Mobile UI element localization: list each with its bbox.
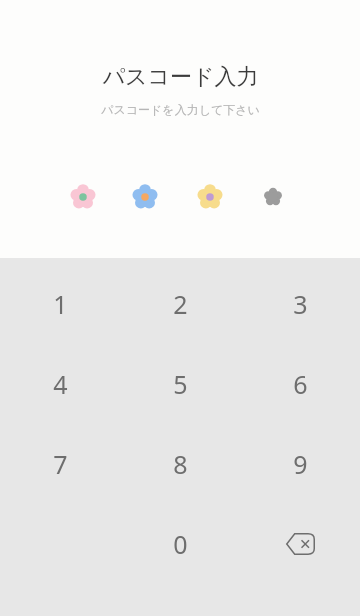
button[interactable]: 1 [0, 264, 120, 344]
staticText: 6 [293, 367, 308, 401]
staticText: 9 [293, 447, 308, 481]
button[interactable]: 2 [120, 264, 240, 344]
button[interactable]: 0 [120, 504, 240, 584]
button[interactable]: 4 [0, 344, 120, 424]
staticText: 1 [53, 287, 68, 321]
staticText: 5 [173, 367, 188, 401]
staticText: 7 [53, 447, 68, 481]
staticText: 2 [173, 287, 188, 321]
button[interactable]: 3 [240, 264, 360, 344]
button[interactable]: Backspace [270, 514, 330, 574]
button[interactable]: 9 [240, 424, 360, 504]
button[interactable]: 6 [240, 344, 360, 424]
staticText: パスコードを入力して下さい [101, 102, 260, 117]
staticText: 3 [293, 287, 308, 321]
staticText: 4 [53, 367, 68, 401]
staticText: パスコード入力 [102, 63, 259, 91]
button[interactable]: 7 [0, 424, 120, 504]
button[interactable]: 5 [120, 344, 240, 424]
staticText: 8 [173, 447, 188, 481]
staticText: 0 [173, 527, 188, 561]
button[interactable]: 8 [120, 424, 240, 504]
